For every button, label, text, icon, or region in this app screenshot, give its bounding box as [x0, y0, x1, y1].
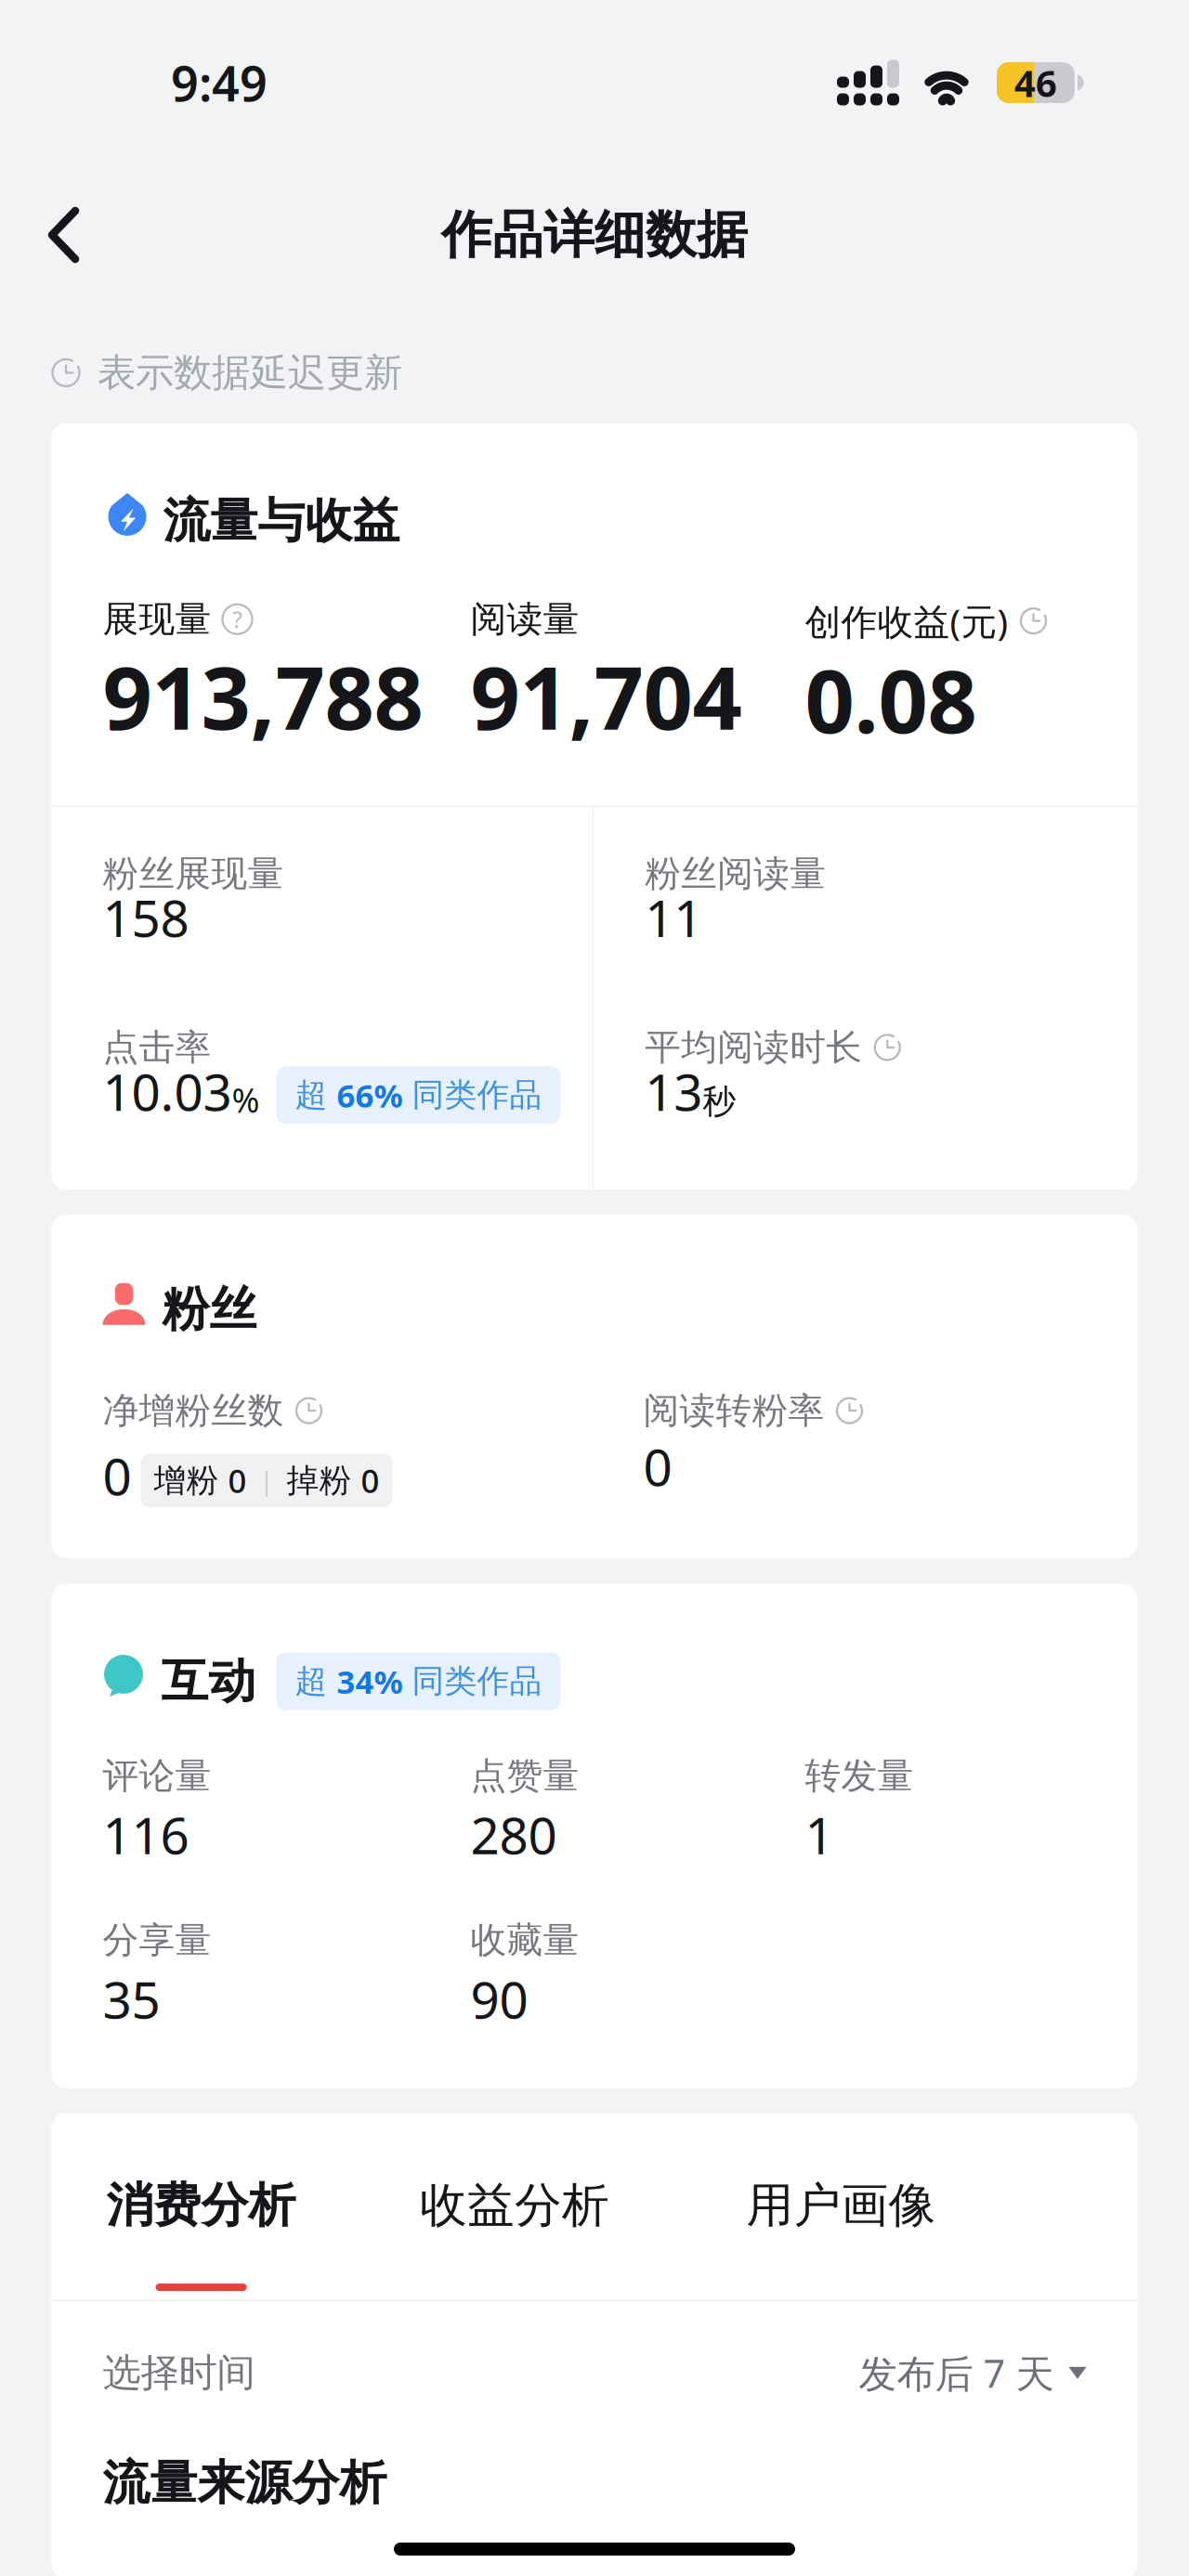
staticText: 点赞量	[470, 1754, 579, 1798]
staticText: 秒	[703, 1081, 736, 1122]
staticText: 13	[645, 1057, 703, 1125]
staticText: 流量与收益	[163, 492, 400, 550]
button[interactable]: 返回	[0, 179, 112, 291]
staticText: 同类作品	[403, 1075, 542, 1115]
staticText: 作品详细数据	[441, 204, 748, 266]
staticText: 35	[103, 1965, 160, 2033]
staticText: 粉丝阅读量	[645, 852, 826, 896]
staticText: 116	[103, 1801, 189, 1868]
staticText: 展现量	[103, 597, 211, 641]
staticText: 11	[645, 884, 703, 951]
staticText: 9:49	[171, 51, 268, 115]
staticText: 收益分析	[420, 2177, 609, 2234]
staticText: 掉粉	[287, 1461, 361, 1500]
staticText: 46	[1014, 58, 1057, 107]
staticText: 转发量	[805, 1754, 914, 1798]
staticText: 阅读量	[470, 597, 579, 641]
staticText: 158	[103, 884, 189, 951]
staticText: 粉丝展现量	[103, 852, 284, 896]
staticText: 90	[470, 1965, 528, 2033]
staticText: 发布后 7 天	[859, 2347, 1054, 2398]
staticText: 收藏量	[470, 1918, 579, 1962]
staticText: 1	[805, 1801, 834, 1868]
staticText: 粉丝	[162, 1281, 257, 1338]
staticText: 互动	[161, 1652, 256, 1710]
staticText: 同类作品	[403, 1661, 542, 1701]
staticText: 平均阅读时长	[645, 1025, 862, 1069]
staticText: 分享量	[103, 1918, 211, 1962]
button[interactable]: 用户画像	[679, 2113, 1004, 2234]
staticText: 913,788	[103, 638, 423, 753]
staticText: %	[232, 1078, 260, 1122]
staticText: 34%	[337, 1660, 403, 1703]
staticText: 0	[228, 1459, 247, 1502]
staticText: 0	[361, 1459, 379, 1502]
button[interactable]: 发布后 7 天	[859, 2347, 1086, 2398]
staticText: 用户画像	[746, 2177, 936, 2234]
staticText: 10.03	[103, 1057, 232, 1125]
staticText: 0	[643, 1433, 672, 1500]
staticText: 消费分析	[106, 2177, 296, 2234]
staticText: 0.08	[805, 642, 977, 757]
button[interactable]: 收益分析	[351, 2113, 679, 2234]
button[interactable]: 消费分析	[52, 2113, 351, 2299]
staticText: 0	[103, 1442, 131, 1509]
staticText: 评论量	[103, 1754, 211, 1798]
staticText: 66%	[337, 1074, 403, 1116]
staticText: 91,704	[470, 638, 742, 753]
staticText: 超	[295, 1075, 337, 1115]
staticText: 流量来源分析	[103, 2454, 387, 2512]
staticText: 表示数据延迟更新	[98, 349, 402, 396]
staticText: 280	[470, 1801, 557, 1868]
staticText: 阅读转粉率	[643, 1389, 824, 1433]
staticText: 增粉	[154, 1461, 228, 1500]
staticText: 点击率	[103, 1025, 211, 1069]
staticText: 选择时间	[103, 2349, 255, 2396]
staticText: |	[247, 1464, 287, 1497]
staticText: ?	[232, 604, 242, 635]
staticText: 超	[295, 1661, 337, 1701]
staticText: 创作收益(元)	[805, 597, 1008, 645]
staticText: 净增粉丝数	[103, 1389, 284, 1433]
